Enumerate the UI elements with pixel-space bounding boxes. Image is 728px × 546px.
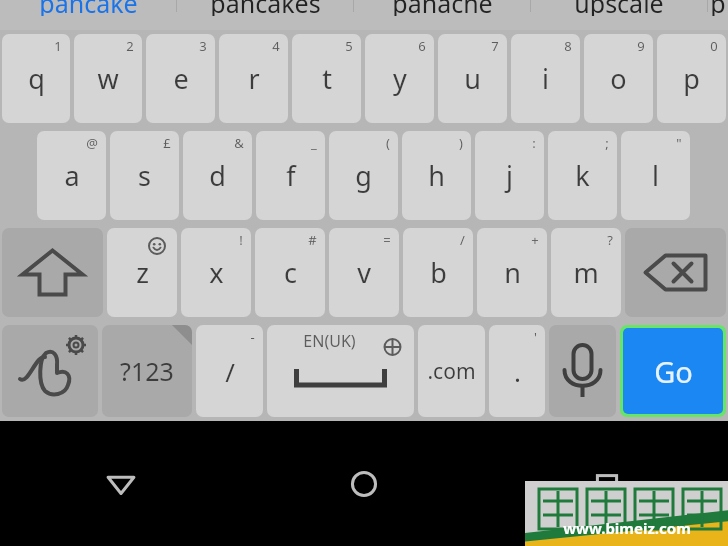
staticText: @ xyxy=(86,134,98,152)
button[interactable]: Space xyxy=(267,325,414,417)
button[interactable]: upscale xyxy=(531,0,707,16)
staticText: ! xyxy=(239,231,243,249)
staticText: g xyxy=(355,157,372,194)
button[interactable]: ?123 xyxy=(102,325,192,417)
button[interactable]: g xyxy=(329,131,398,220)
staticText: + xyxy=(531,231,539,249)
staticText: a xyxy=(64,157,80,194)
button[interactable]: o xyxy=(584,34,653,123)
button[interactable]: p xyxy=(657,34,726,123)
button[interactable]: y xyxy=(365,34,434,123)
staticText: c xyxy=(284,254,297,291)
staticText: ( xyxy=(386,134,390,152)
button[interactable]: f xyxy=(256,131,325,220)
button[interactable]: k xyxy=(548,131,617,220)
staticText: - xyxy=(250,328,255,346)
button[interactable]: w xyxy=(74,34,142,123)
staticText: ) xyxy=(459,134,463,152)
staticText: h xyxy=(428,157,445,194)
button[interactable]: .com xyxy=(418,325,485,417)
staticText: & xyxy=(234,134,244,152)
staticText: b xyxy=(430,254,447,291)
button[interactable]: p xyxy=(708,0,728,16)
button[interactable]: Voice input xyxy=(549,325,616,417)
staticText: f xyxy=(286,157,296,194)
button[interactable]: Shift xyxy=(2,228,103,317)
staticText: ? xyxy=(607,231,613,249)
staticText: s xyxy=(138,157,151,194)
button[interactable]: panache xyxy=(354,0,530,16)
button[interactable]: b xyxy=(403,228,473,317)
staticText: u xyxy=(464,60,481,97)
staticText: _ xyxy=(311,134,317,152)
staticText: z xyxy=(136,254,149,291)
button[interactable]: c xyxy=(255,228,325,317)
button[interactable]: z xyxy=(107,228,177,317)
button[interactable]: pancake xyxy=(0,0,176,16)
staticText: ?123 xyxy=(120,354,174,388)
staticText: " xyxy=(676,134,682,152)
staticText: 0 xyxy=(710,37,718,55)
staticText: .com xyxy=(427,357,476,386)
staticText: Go xyxy=(654,352,693,391)
staticText: y xyxy=(393,60,407,97)
button[interactable]: Go xyxy=(623,328,723,414)
staticText: 4 xyxy=(272,37,280,55)
staticText: d xyxy=(209,157,226,194)
staticText: . xyxy=(514,354,521,389)
button[interactable]: d xyxy=(183,131,252,220)
staticText: upscale xyxy=(574,0,664,16)
staticText: / xyxy=(225,354,235,389)
staticText: p xyxy=(683,60,700,97)
button[interactable]: x xyxy=(181,228,251,317)
staticText: 8 xyxy=(564,37,572,55)
staticText: panache xyxy=(392,0,493,16)
button[interactable]: Handwriting input xyxy=(2,325,98,417)
staticText: v xyxy=(357,254,371,291)
staticText: 1 xyxy=(54,37,62,55)
button[interactable]: v xyxy=(329,228,399,317)
button[interactable]: i xyxy=(511,34,580,123)
staticText: 9 xyxy=(637,37,645,55)
button[interactable]: u xyxy=(438,34,507,123)
staticText: o xyxy=(610,60,627,97)
button[interactable]: h xyxy=(402,131,471,220)
staticText: # xyxy=(308,231,317,249)
staticText: www.bimeiz.com xyxy=(563,518,691,538)
button[interactable]: Backspace xyxy=(625,228,726,317)
button[interactable]: t xyxy=(292,34,361,123)
staticText: w xyxy=(97,60,119,97)
button[interactable]: j xyxy=(475,131,544,220)
button[interactable]: Back xyxy=(0,421,242,546)
staticText: e xyxy=(173,60,189,97)
button[interactable]: a xyxy=(37,131,106,220)
staticText: j xyxy=(506,157,513,194)
button[interactable]: Home xyxy=(242,421,485,546)
staticText: £ xyxy=(163,134,171,152)
staticText: 6 xyxy=(418,37,426,55)
staticText: pancakes xyxy=(210,0,321,16)
button[interactable]: m xyxy=(551,228,621,317)
button[interactable]: q xyxy=(2,34,70,123)
staticText: 2 xyxy=(126,37,134,55)
button[interactable]: e xyxy=(146,34,215,123)
button[interactable]: s xyxy=(110,131,179,220)
button[interactable]: pancakes xyxy=(177,0,353,16)
button[interactable]: Recent apps xyxy=(485,421,728,546)
button[interactable]: n xyxy=(477,228,547,317)
staticText: 5 xyxy=(345,37,353,55)
button[interactable]: / xyxy=(196,325,263,417)
staticText: 3 xyxy=(199,37,207,55)
staticText: : xyxy=(532,134,536,152)
staticText: l xyxy=(652,157,659,194)
staticText: ' xyxy=(534,328,537,346)
staticText: t xyxy=(322,60,332,97)
button[interactable]: l xyxy=(621,131,690,220)
button[interactable]: . xyxy=(489,325,545,417)
staticText: = xyxy=(383,231,391,249)
staticText: i xyxy=(542,60,549,97)
staticText: n xyxy=(504,254,521,291)
button[interactable]: r xyxy=(219,34,288,123)
staticText: EN(UK) xyxy=(303,330,356,352)
staticText: p xyxy=(710,0,726,16)
